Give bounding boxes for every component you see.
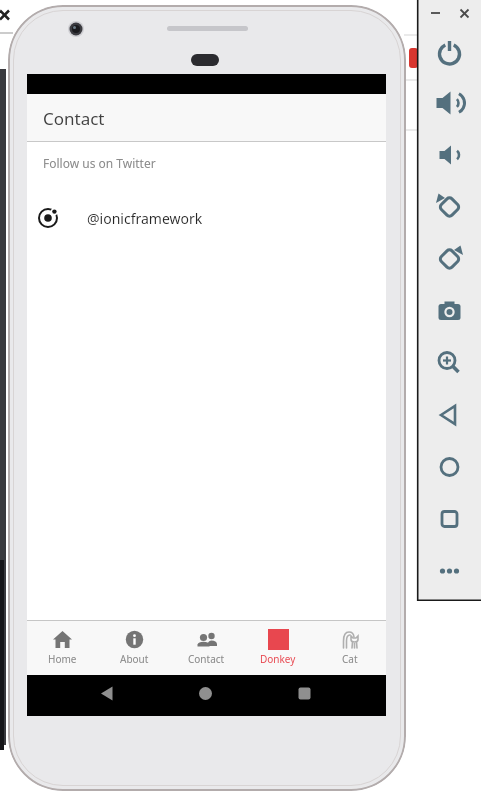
button[interactable]: Contact [170, 620, 242, 675]
button[interactable]: @ionicframework [27, 198, 386, 238]
staticText: @ionicframework [87, 209, 203, 228]
button[interactable]: Home [27, 620, 98, 675]
button[interactable]: About [98, 620, 170, 675]
staticText: Contact [43, 107, 105, 130]
staticText: Donkey [260, 652, 296, 666]
staticText: Follow us on Twitter [43, 155, 156, 171]
button[interactable]: Cat [314, 620, 386, 675]
staticText: About [120, 652, 149, 666]
staticText: Cat [342, 652, 358, 666]
button[interactable]: Donkey [242, 620, 314, 675]
staticText: Home [48, 652, 77, 666]
staticText: Contact [188, 652, 225, 666]
